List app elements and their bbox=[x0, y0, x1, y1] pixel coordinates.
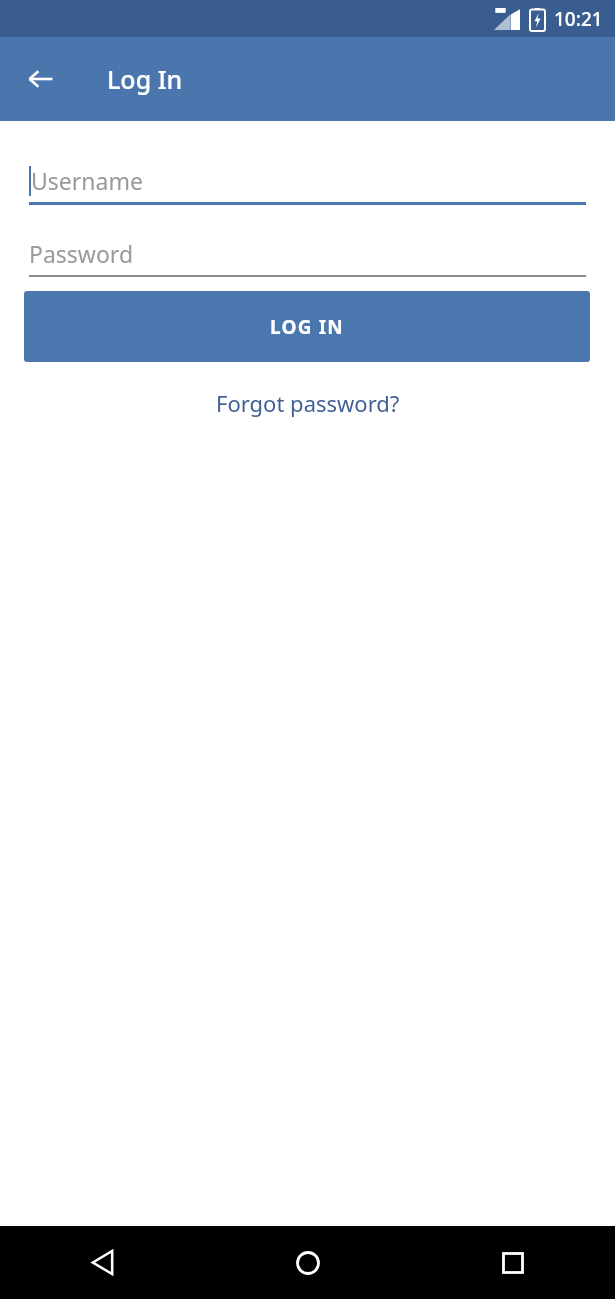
button[interactable]: Home bbox=[205, 1226, 410, 1299]
button[interactable]: Password bbox=[29, 238, 586, 277]
button[interactable]: Back bbox=[0, 1226, 205, 1299]
button[interactable]: Username bbox=[29, 165, 586, 205]
button[interactable]: Recent apps bbox=[410, 1226, 615, 1299]
staticText: Log In bbox=[107, 62, 183, 96]
button[interactable]: Forgot password? bbox=[204, 382, 412, 424]
staticText: LOG IN bbox=[270, 314, 345, 340]
staticText: 10:21 bbox=[554, 6, 603, 32]
button[interactable]: LOG IN bbox=[24, 291, 590, 362]
staticText: Password bbox=[29, 238, 134, 269]
staticText: Forgot password? bbox=[216, 388, 400, 418]
button[interactable]: Back bbox=[17, 55, 65, 103]
staticText: Username bbox=[31, 165, 143, 196]
